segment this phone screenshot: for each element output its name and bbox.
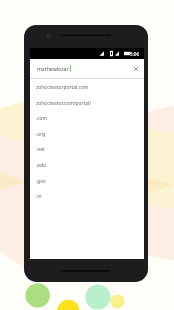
- button[interactable]: .gov: [30, 173, 144, 189]
- staticText: zohocreatorportal.com: [36, 84, 89, 91]
- button[interactable]: .edu: [30, 157, 144, 173]
- staticText: .edu: [36, 162, 47, 169]
- staticText: mathewlozar: [37, 65, 69, 72]
- button[interactable]: .org: [30, 126, 144, 142]
- staticText: .in: [36, 193, 42, 200]
- button[interactable]: zohocreatorportal.com: [30, 79, 144, 95]
- button[interactable]: .net: [30, 141, 144, 157]
- staticText: 5:06: [130, 51, 140, 57]
- button[interactable]: .in: [30, 188, 144, 204]
- staticText: .net: [36, 146, 45, 153]
- staticText: .gov: [36, 178, 46, 185]
- staticText: .org: [36, 131, 46, 138]
- button[interactable]: zohocreator.com/portal/: [30, 95, 144, 111]
- staticText: zohocreator.com/portal/: [36, 100, 92, 107]
- button[interactable]: .com: [30, 110, 144, 126]
- button[interactable]: Clear search: [131, 64, 141, 74]
- staticText: .com: [36, 115, 48, 122]
